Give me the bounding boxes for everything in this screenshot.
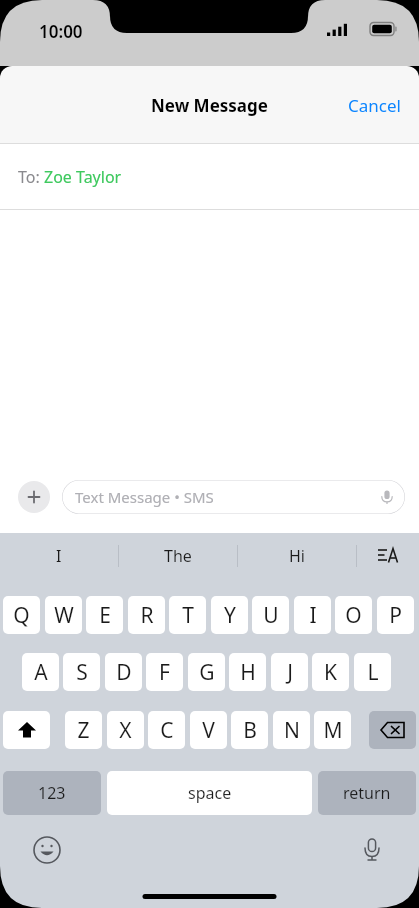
staticText: P <box>389 601 402 630</box>
staticText: Q <box>13 601 30 630</box>
button[interactable]: J <box>271 653 308 691</box>
button[interactable]: Formatting <box>357 533 419 579</box>
staticText: L <box>367 658 379 687</box>
button[interactable]: K <box>312 653 349 691</box>
button[interactable]: C <box>148 711 185 749</box>
button[interactable]: Y <box>211 596 248 634</box>
staticText: G <box>199 658 215 687</box>
button[interactable]: To: <box>0 144 419 210</box>
staticText: W <box>54 601 74 630</box>
button[interactable]: D <box>105 653 142 691</box>
button[interactable]: U <box>252 596 289 634</box>
button[interactable]: O <box>335 596 372 634</box>
staticText: Zoe Taylor <box>44 166 122 188</box>
staticText: S <box>76 658 88 687</box>
button[interactable]: X <box>107 711 144 749</box>
staticText: Text Message • SMS <box>75 487 214 507</box>
button[interactable]: Emoji <box>30 833 64 867</box>
button[interactable]: return <box>318 771 416 815</box>
button[interactable]: Dictate <box>355 833 389 867</box>
staticText: B <box>243 716 257 745</box>
staticText: I <box>309 601 317 630</box>
staticText: Cancel <box>348 94 401 117</box>
button[interactable]: space <box>107 771 312 815</box>
staticText: 123 <box>38 782 66 804</box>
button[interactable]: Shift <box>3 711 50 749</box>
button[interactable]: Q <box>3 596 40 634</box>
staticText: N <box>284 716 300 745</box>
staticText: D <box>116 658 132 687</box>
button[interactable]: Backspace <box>369 711 416 749</box>
button[interactable]: Hi <box>238 533 356 579</box>
button[interactable]: F <box>146 653 183 691</box>
staticText: E <box>99 601 111 630</box>
button[interactable]: L <box>354 653 391 691</box>
staticText: V <box>202 716 215 745</box>
button[interactable]: B <box>231 711 268 749</box>
staticText: New Message <box>151 94 268 117</box>
staticText: R <box>140 601 154 630</box>
button[interactable]: V <box>190 711 227 749</box>
staticText: J <box>287 658 293 687</box>
staticText: return <box>343 782 391 804</box>
button[interactable]: R <box>128 596 165 634</box>
button[interactable]: I <box>294 596 331 634</box>
staticText: A <box>34 658 48 687</box>
button[interactable]: H <box>229 653 266 691</box>
button[interactable]: A <box>22 653 59 691</box>
button[interactable]: Cancel <box>330 82 419 129</box>
staticText: F <box>159 658 170 687</box>
staticText: T <box>182 601 194 630</box>
button[interactable]: I <box>0 533 118 579</box>
staticText: space <box>188 782 232 804</box>
staticText: Hi <box>289 545 305 567</box>
staticText: The <box>164 545 192 567</box>
staticText: M <box>323 716 343 745</box>
button[interactable]: N <box>273 711 310 749</box>
button[interactable]: G <box>188 653 225 691</box>
staticText: U <box>263 601 279 630</box>
button[interactable]: S <box>63 653 100 691</box>
button[interactable]: P <box>377 596 414 634</box>
button[interactable]: E <box>86 596 123 634</box>
staticText: C <box>160 716 174 745</box>
button[interactable]: Add attachment <box>18 481 50 513</box>
staticText: K <box>324 658 337 687</box>
button[interactable]: M <box>314 711 351 749</box>
button[interactable]: W <box>45 596 82 634</box>
staticText: Y <box>224 601 236 630</box>
staticText: X <box>119 716 132 745</box>
staticText: Z <box>77 716 90 745</box>
staticText: To: <box>18 166 44 188</box>
button[interactable]: Text Message • SMS <box>62 480 405 514</box>
button[interactable]: T <box>169 596 206 634</box>
button[interactable]: 123 <box>3 771 101 815</box>
staticText: I <box>56 545 62 567</box>
staticText: H <box>240 658 256 687</box>
staticText: 10:00 <box>39 20 83 43</box>
button[interactable]: Z <box>65 711 102 749</box>
staticText: O <box>345 601 362 630</box>
button[interactable]: The <box>119 533 237 579</box>
